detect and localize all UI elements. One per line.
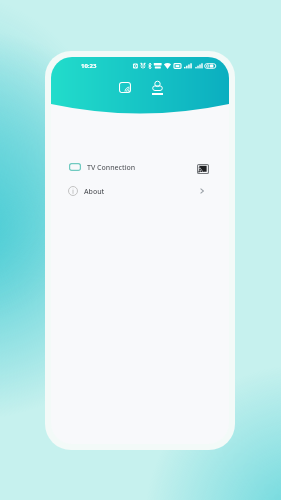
button[interactable]: Account — [145, 75, 169, 99]
button[interactable]: Cast — [196, 161, 209, 174]
button[interactable]: Cast screen — [113, 76, 137, 98]
button[interactable]: TV Connection — [51, 155, 229, 179]
staticText: About — [84, 187, 105, 197]
button[interactable]: About — [51, 179, 229, 203]
staticText: 10:23 — [81, 62, 97, 70]
staticText: TV Connection — [87, 163, 136, 173]
